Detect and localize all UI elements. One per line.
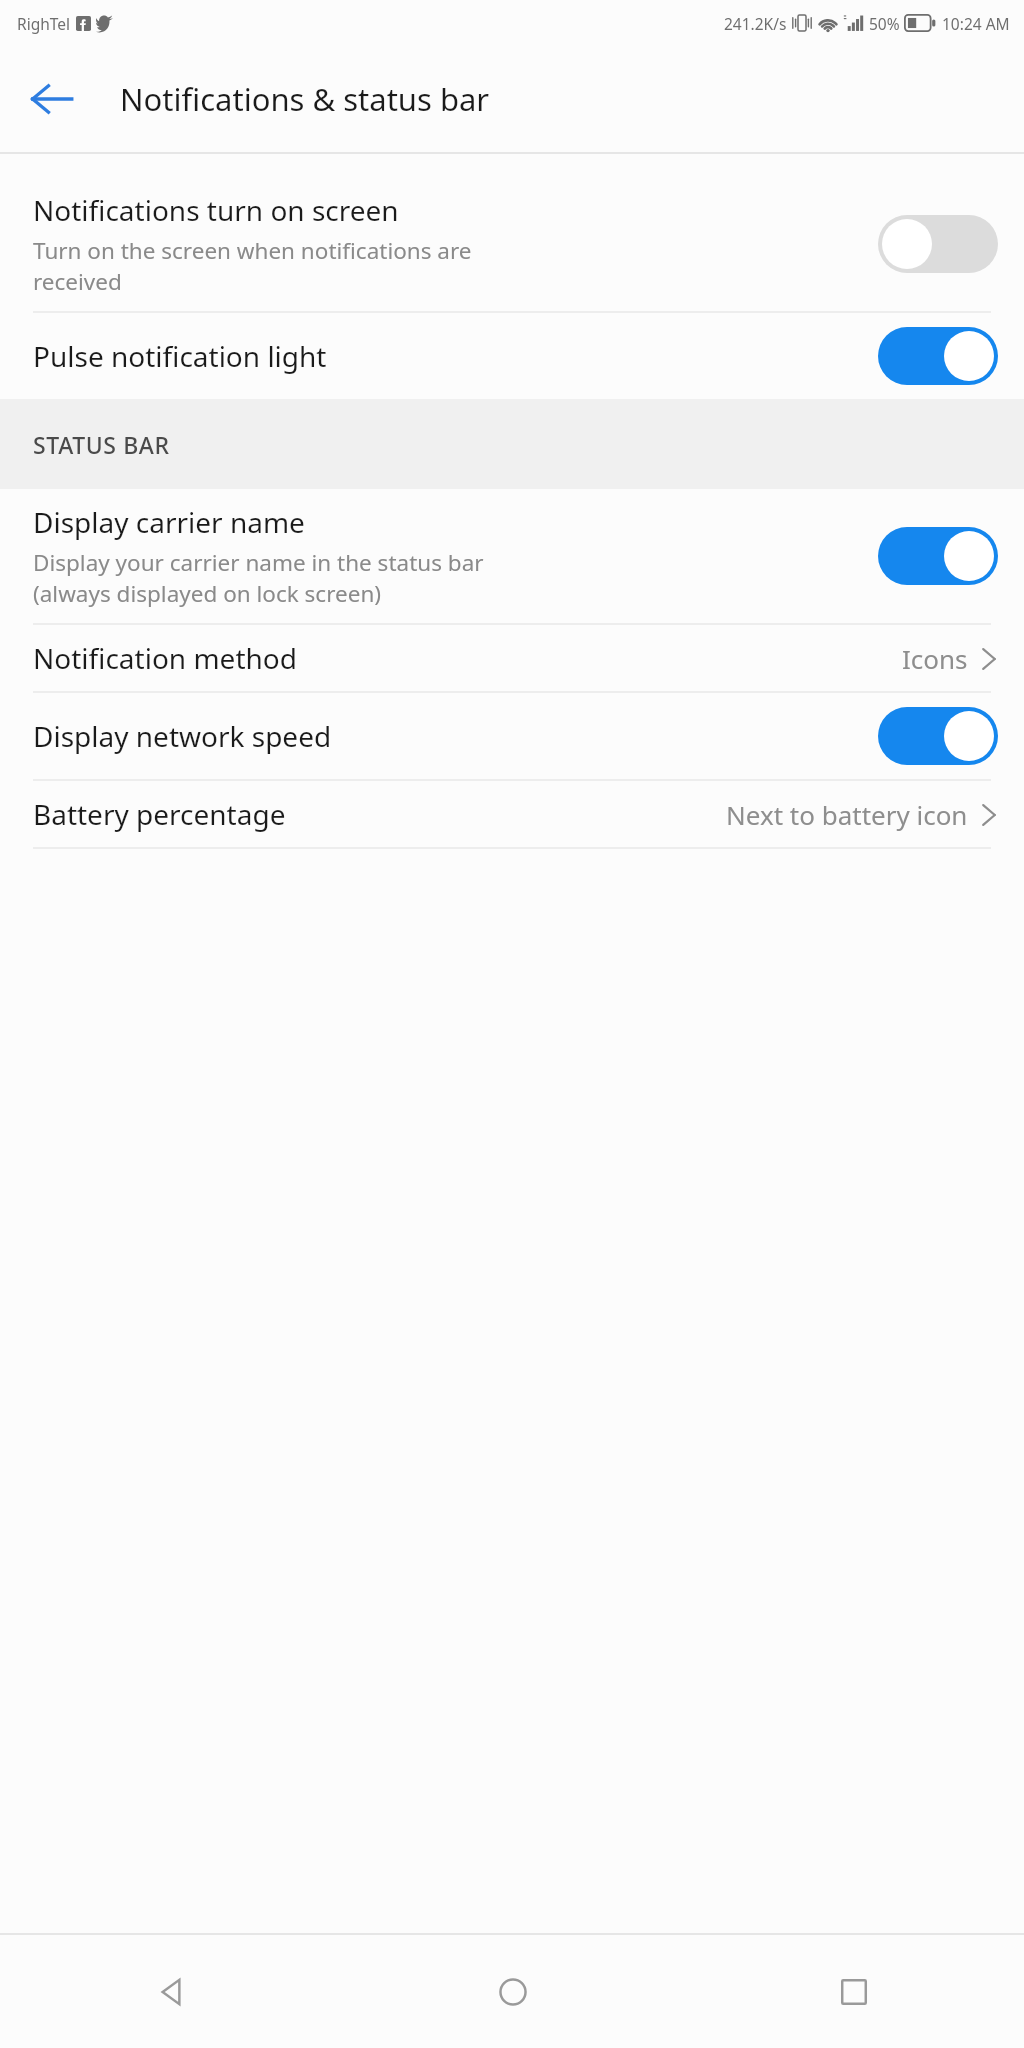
button[interactable]: Recent apps bbox=[683, 1935, 1024, 2048]
staticText: Pulse notification light bbox=[33, 337, 327, 375]
button[interactable]: Back bbox=[0, 1935, 342, 2048]
staticText: Turn on the screen when notifications ar… bbox=[33, 235, 472, 297]
staticText: Battery percentage bbox=[33, 795, 286, 833]
staticText: 10:24 AM bbox=[942, 13, 1010, 34]
button[interactable]: Notification method bbox=[0, 625, 1024, 691]
staticText: 241.2K/s bbox=[724, 13, 787, 34]
button[interactable]: Display network speed bbox=[0, 693, 1024, 779]
button[interactable]: Home bbox=[342, 1935, 683, 2048]
button[interactable]: Display carrier name bbox=[0, 489, 1024, 623]
button[interactable]: Notifications turn on screen bbox=[0, 177, 1024, 311]
staticText: Next to battery icon bbox=[726, 797, 968, 832]
staticText: Notification method bbox=[33, 639, 297, 677]
button[interactable]: Toggle on bbox=[878, 327, 998, 385]
staticText: Icons bbox=[902, 641, 968, 676]
staticText: 50% bbox=[869, 13, 900, 34]
button[interactable]: Toggle off bbox=[878, 215, 998, 273]
staticText: Notifications turn on screen bbox=[33, 191, 399, 229]
staticText: Display network speed bbox=[33, 717, 332, 755]
staticText: RighTel bbox=[17, 13, 71, 34]
staticText: STATUS BAR bbox=[33, 429, 170, 460]
staticText: Notifications & status bar bbox=[120, 78, 490, 120]
staticText: Display carrier name bbox=[33, 503, 305, 541]
button[interactable]: Battery percentage bbox=[0, 781, 1024, 847]
button[interactable]: Toggle on bbox=[878, 527, 998, 585]
button[interactable]: Toggle on bbox=[878, 707, 998, 765]
button[interactable]: Pulse notification light bbox=[0, 313, 1024, 399]
staticText: Display your carrier name in the status … bbox=[33, 547, 484, 609]
button[interactable]: Back bbox=[22, 69, 82, 129]
